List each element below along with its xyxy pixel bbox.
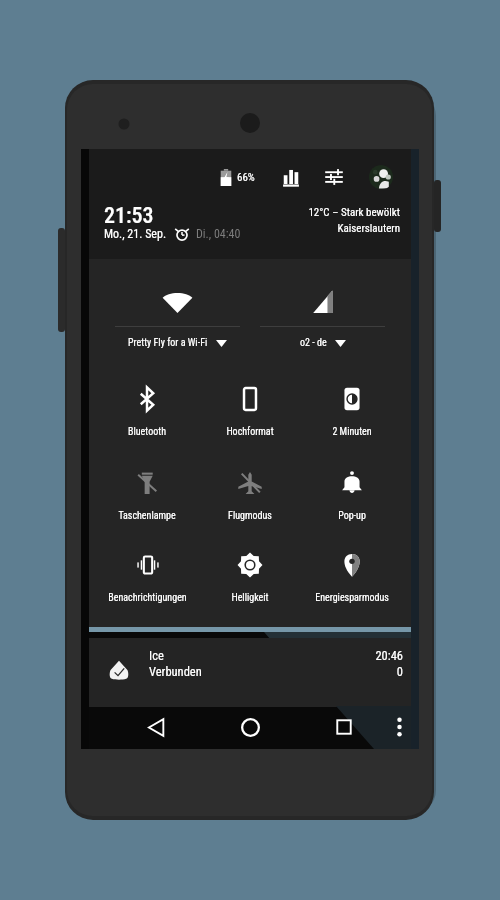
- button[interactable]: Taschenlampe: [96, 465, 198, 543]
- staticText: Kaiserslautern: [337, 222, 400, 235]
- button[interactable]: Ice: [89, 638, 411, 707]
- staticText: 2 Minuten: [332, 426, 372, 438]
- staticText: Di., 04:40: [196, 227, 241, 241]
- staticText: Bluetooth: [128, 426, 166, 438]
- button[interactable]: More options: [387, 707, 411, 747]
- staticText: Mo., 21. Sep.: [104, 227, 167, 241]
- button[interactable]: Pretty Fly for a Wi-Fi: [115, 280, 240, 352]
- button[interactable]: Benachrichtigungen: [96, 547, 198, 625]
- staticText: o2 - de: [300, 337, 327, 349]
- staticText: Pretty Fly for a Wi-Fi: [128, 337, 208, 349]
- button[interactable]: o2 - de: [260, 280, 385, 352]
- button[interactable]: Pop-up: [301, 465, 403, 543]
- staticText: Taschenlampe: [118, 510, 176, 522]
- button[interactable]: Statistics: [280, 166, 302, 188]
- staticText: 21:53: [104, 203, 154, 229]
- button[interactable]: Back: [136, 707, 176, 747]
- button[interactable]: Energiesparmodus: [301, 547, 403, 625]
- button[interactable]: Flugmodus: [199, 465, 301, 543]
- staticText: 12°C – Stark bewölkt: [308, 206, 400, 219]
- button[interactable]: Recents: [324, 707, 364, 747]
- button[interactable]: Home: [230, 707, 270, 747]
- staticText: Hochformat: [226, 426, 274, 438]
- staticText: Energiesparmodus: [315, 592, 389, 604]
- button[interactable]: Settings: [323, 166, 345, 188]
- button[interactable]: Profile: [368, 165, 394, 189]
- button[interactable]: 2 Minuten: [301, 381, 403, 459]
- staticText: 20:46: [289, 648, 403, 663]
- button[interactable]: Hochformat: [199, 381, 301, 459]
- staticText: Benachrichtigungen: [108, 592, 187, 604]
- staticText: Helligkeit: [231, 592, 269, 604]
- staticText: Ice: [149, 648, 164, 663]
- staticText: Pop-up: [338, 510, 366, 522]
- staticText: 0: [289, 664, 403, 679]
- button[interactable]: Helligkeit: [199, 547, 301, 625]
- staticText: 66%: [237, 171, 255, 184]
- staticText: Verbunden: [149, 664, 202, 679]
- button[interactable]: Bluetooth: [96, 381, 198, 459]
- staticText: Flugmodus: [228, 510, 272, 522]
